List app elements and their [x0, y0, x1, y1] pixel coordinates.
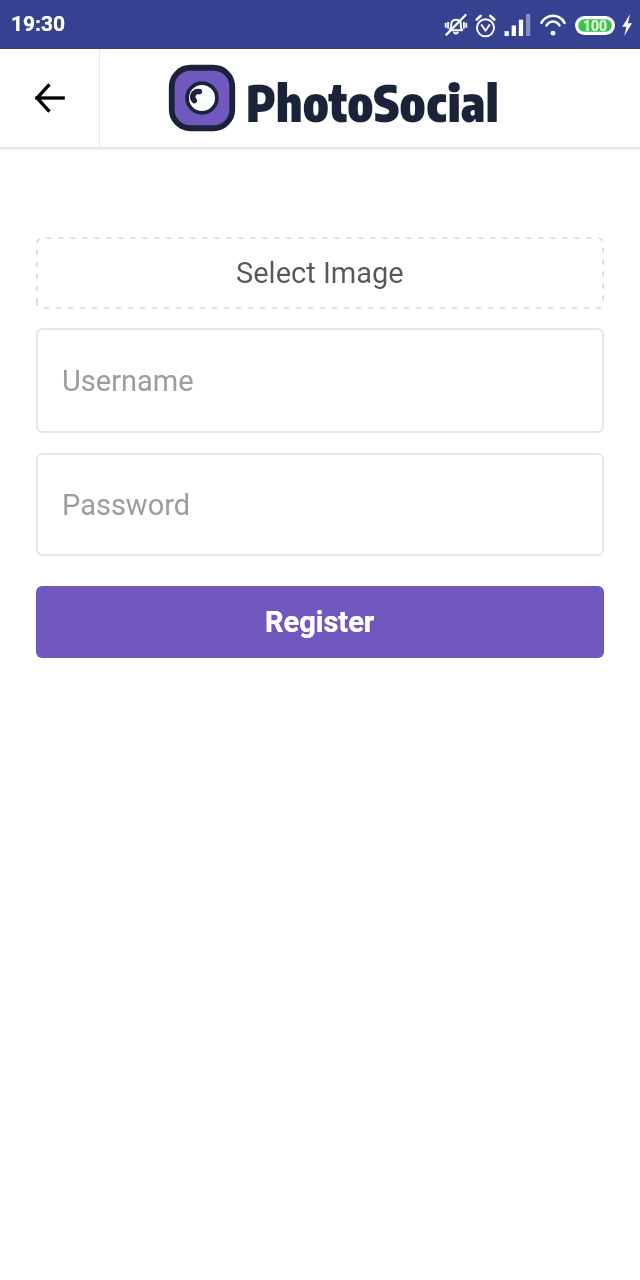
staticText: 100: [583, 18, 608, 34]
button[interactable]: Select Image: [36, 237, 604, 309]
staticText: Username: [62, 364, 194, 398]
button[interactable]: Register: [36, 586, 604, 658]
staticText: PhotoSocial: [246, 72, 499, 133]
button[interactable]: Password: [36, 453, 604, 556]
button[interactable]: Username: [36, 328, 604, 433]
button[interactable]: Back: [0, 49, 99, 147]
staticText: Select Image: [236, 256, 404, 290]
staticText: 19:30: [11, 12, 66, 37]
staticText: Register: [265, 605, 375, 639]
staticText: Password: [62, 488, 191, 522]
